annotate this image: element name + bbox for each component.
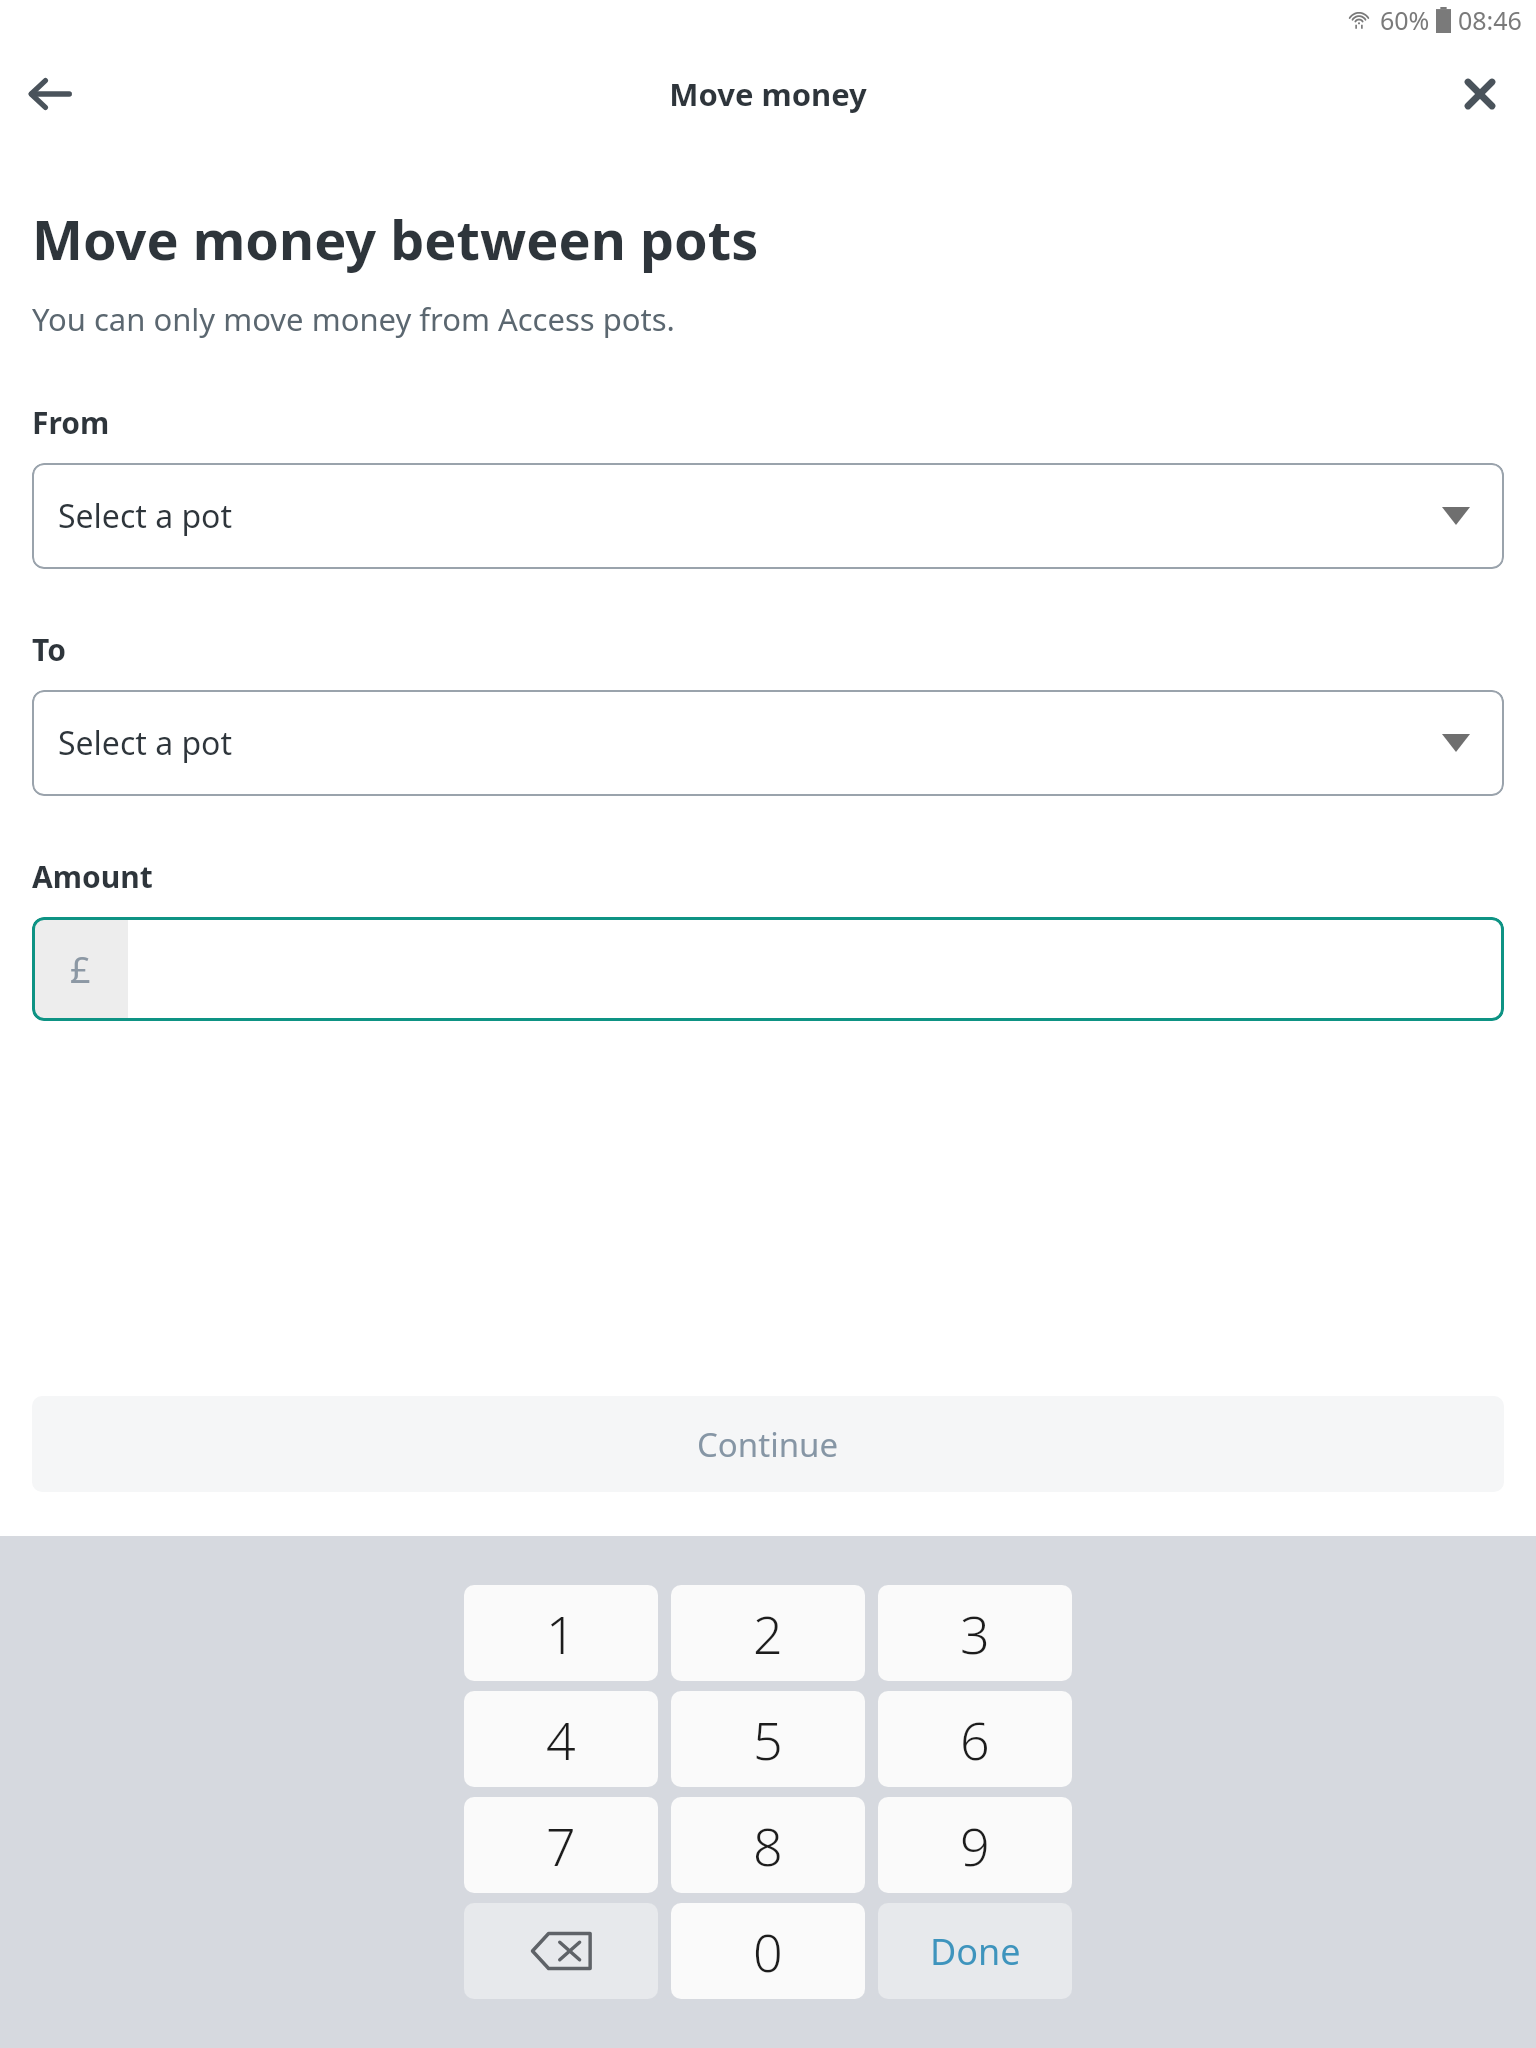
staticText: 1 <box>546 1598 576 1669</box>
button[interactable]: 0 <box>671 1903 865 1999</box>
staticText: 3 <box>960 1598 990 1669</box>
staticText: To <box>32 629 66 670</box>
button[interactable]: Backspace <box>464 1903 658 1999</box>
staticText: Move money <box>669 73 867 115</box>
button[interactable]: 4 <box>464 1691 658 1787</box>
button[interactable]: 1 <box>464 1585 658 1681</box>
staticText: 60% <box>1380 3 1430 37</box>
button[interactable]: 8 <box>671 1797 865 1893</box>
staticText: From <box>32 402 110 443</box>
button[interactable]: Select a pot <box>32 463 1504 569</box>
staticText: 2 <box>753 1598 783 1669</box>
staticText: Move money between pots <box>32 202 759 276</box>
staticText: £ <box>70 945 91 994</box>
button[interactable]: Continue <box>32 1396 1504 1492</box>
staticText: You can only move money from Access pots… <box>32 298 675 340</box>
staticText: 6 <box>960 1704 990 1775</box>
staticText: 08:46 <box>1458 3 1522 37</box>
button[interactable]: Back <box>8 52 92 136</box>
button[interactable]: Select a pot <box>32 690 1504 796</box>
staticText: Select a pot <box>58 721 233 765</box>
staticText: Continue <box>697 1422 839 1467</box>
button[interactable]: 5 <box>671 1691 865 1787</box>
staticText: 8 <box>753 1810 783 1881</box>
button[interactable]: 6 <box>878 1691 1072 1787</box>
button[interactable]: 7 <box>464 1797 658 1893</box>
button[interactable]: £ <box>32 917 1504 1021</box>
staticText: Select a pot <box>58 494 233 538</box>
staticText: 0 <box>753 1916 783 1987</box>
button[interactable]: 9 <box>878 1797 1072 1893</box>
staticText: Amount <box>32 856 153 897</box>
staticText: 9 <box>960 1810 990 1881</box>
staticText: 7 <box>546 1810 576 1881</box>
button[interactable]: Done <box>878 1903 1072 1999</box>
button[interactable]: Close <box>1438 52 1522 136</box>
staticText: 4 <box>546 1704 576 1775</box>
button[interactable]: 2 <box>671 1585 865 1681</box>
staticText: Done <box>930 1927 1021 1976</box>
button[interactable]: 3 <box>878 1585 1072 1681</box>
staticText: 5 <box>753 1704 783 1775</box>
